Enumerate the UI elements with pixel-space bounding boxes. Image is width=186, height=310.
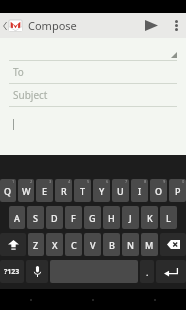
button[interactable]: C	[65, 233, 82, 256]
button[interactable]: V	[84, 233, 101, 256]
staticText: 7	[125, 179, 128, 184]
staticText: 8	[144, 179, 147, 184]
staticText: To	[13, 65, 24, 79]
staticText: A	[14, 212, 20, 224]
button[interactable]: O	[150, 179, 167, 202]
staticText: F	[71, 212, 76, 224]
button[interactable]: E	[36, 179, 53, 202]
staticText: O	[155, 185, 163, 197]
staticText: X	[52, 239, 58, 251]
button[interactable]: M	[141, 233, 158, 256]
staticText: I	[138, 185, 142, 197]
staticText: 6	[106, 179, 109, 184]
staticText: Y	[99, 185, 105, 197]
staticText: P	[175, 185, 181, 197]
button[interactable]: Delete	[160, 233, 186, 256]
button[interactable]: J	[122, 206, 139, 229]
button[interactable]: Q	[0, 179, 16, 202]
button[interactable]: U	[112, 179, 129, 202]
staticText: T	[80, 185, 86, 197]
button[interactable]: W	[18, 179, 34, 202]
staticText: 1	[12, 179, 15, 184]
button[interactable]: Period	[140, 260, 154, 283]
button[interactable]: X	[46, 233, 63, 256]
button[interactable]: Enter	[156, 260, 186, 283]
button[interactable]: Symbols	[0, 260, 24, 283]
staticText: S	[33, 212, 38, 224]
button[interactable]: R	[55, 179, 72, 202]
button[interactable]: S	[27, 206, 44, 229]
button[interactable]: H	[103, 206, 120, 229]
button[interactable]: More options	[166, 13, 186, 38]
staticText: W	[22, 185, 31, 197]
button[interactable]: D	[46, 206, 63, 229]
staticText: L	[166, 212, 171, 224]
staticText: U	[117, 185, 124, 197]
staticText: V	[90, 239, 96, 251]
button[interactable]: G	[84, 206, 101, 229]
staticText: E	[42, 185, 48, 197]
button[interactable]: To	[0, 61, 186, 84]
button[interactable]	[0, 107, 186, 155]
button[interactable]: Voice input	[26, 260, 48, 283]
staticText: Compose	[28, 18, 77, 33]
staticText: N	[127, 239, 134, 251]
button[interactable]	[0, 38, 186, 61]
staticText: Q	[4, 185, 12, 197]
staticText: H	[108, 212, 115, 224]
staticText: 5	[87, 179, 90, 184]
staticText: D	[51, 212, 58, 224]
staticText: 2	[30, 179, 33, 184]
staticText: Z	[33, 239, 39, 251]
button[interactable]: Z	[28, 233, 44, 256]
button[interactable]: F	[65, 206, 82, 229]
staticText: J	[129, 212, 132, 224]
button[interactable]: I	[131, 179, 148, 202]
button[interactable]: N	[122, 233, 139, 256]
button[interactable]: Y	[93, 179, 110, 202]
staticText: M	[145, 239, 154, 251]
staticText: C	[71, 239, 77, 251]
button[interactable]: L	[160, 206, 177, 229]
button[interactable]: P	[169, 179, 186, 202]
button[interactable]: Subject	[0, 84, 186, 107]
staticText: 9	[163, 179, 166, 184]
button[interactable]: Shift	[0, 233, 26, 256]
button[interactable]: T	[74, 179, 91, 202]
button[interactable]: Send	[136, 13, 166, 38]
button[interactable]: B	[103, 233, 120, 256]
staticText: Subject	[13, 88, 48, 102]
staticText: ?123	[4, 267, 20, 277]
button[interactable]: A	[9, 206, 25, 229]
staticText: G	[89, 212, 96, 224]
button[interactable]: K	[141, 206, 158, 229]
staticText: B	[109, 239, 115, 251]
staticText: 4	[68, 179, 71, 184]
staticText: K	[147, 212, 153, 224]
staticText: R	[61, 185, 67, 197]
staticText: 0	[182, 179, 185, 184]
staticText: .	[146, 266, 149, 278]
button[interactable]: Navigate up	[0, 13, 25, 38]
staticText: 3	[49, 179, 52, 184]
